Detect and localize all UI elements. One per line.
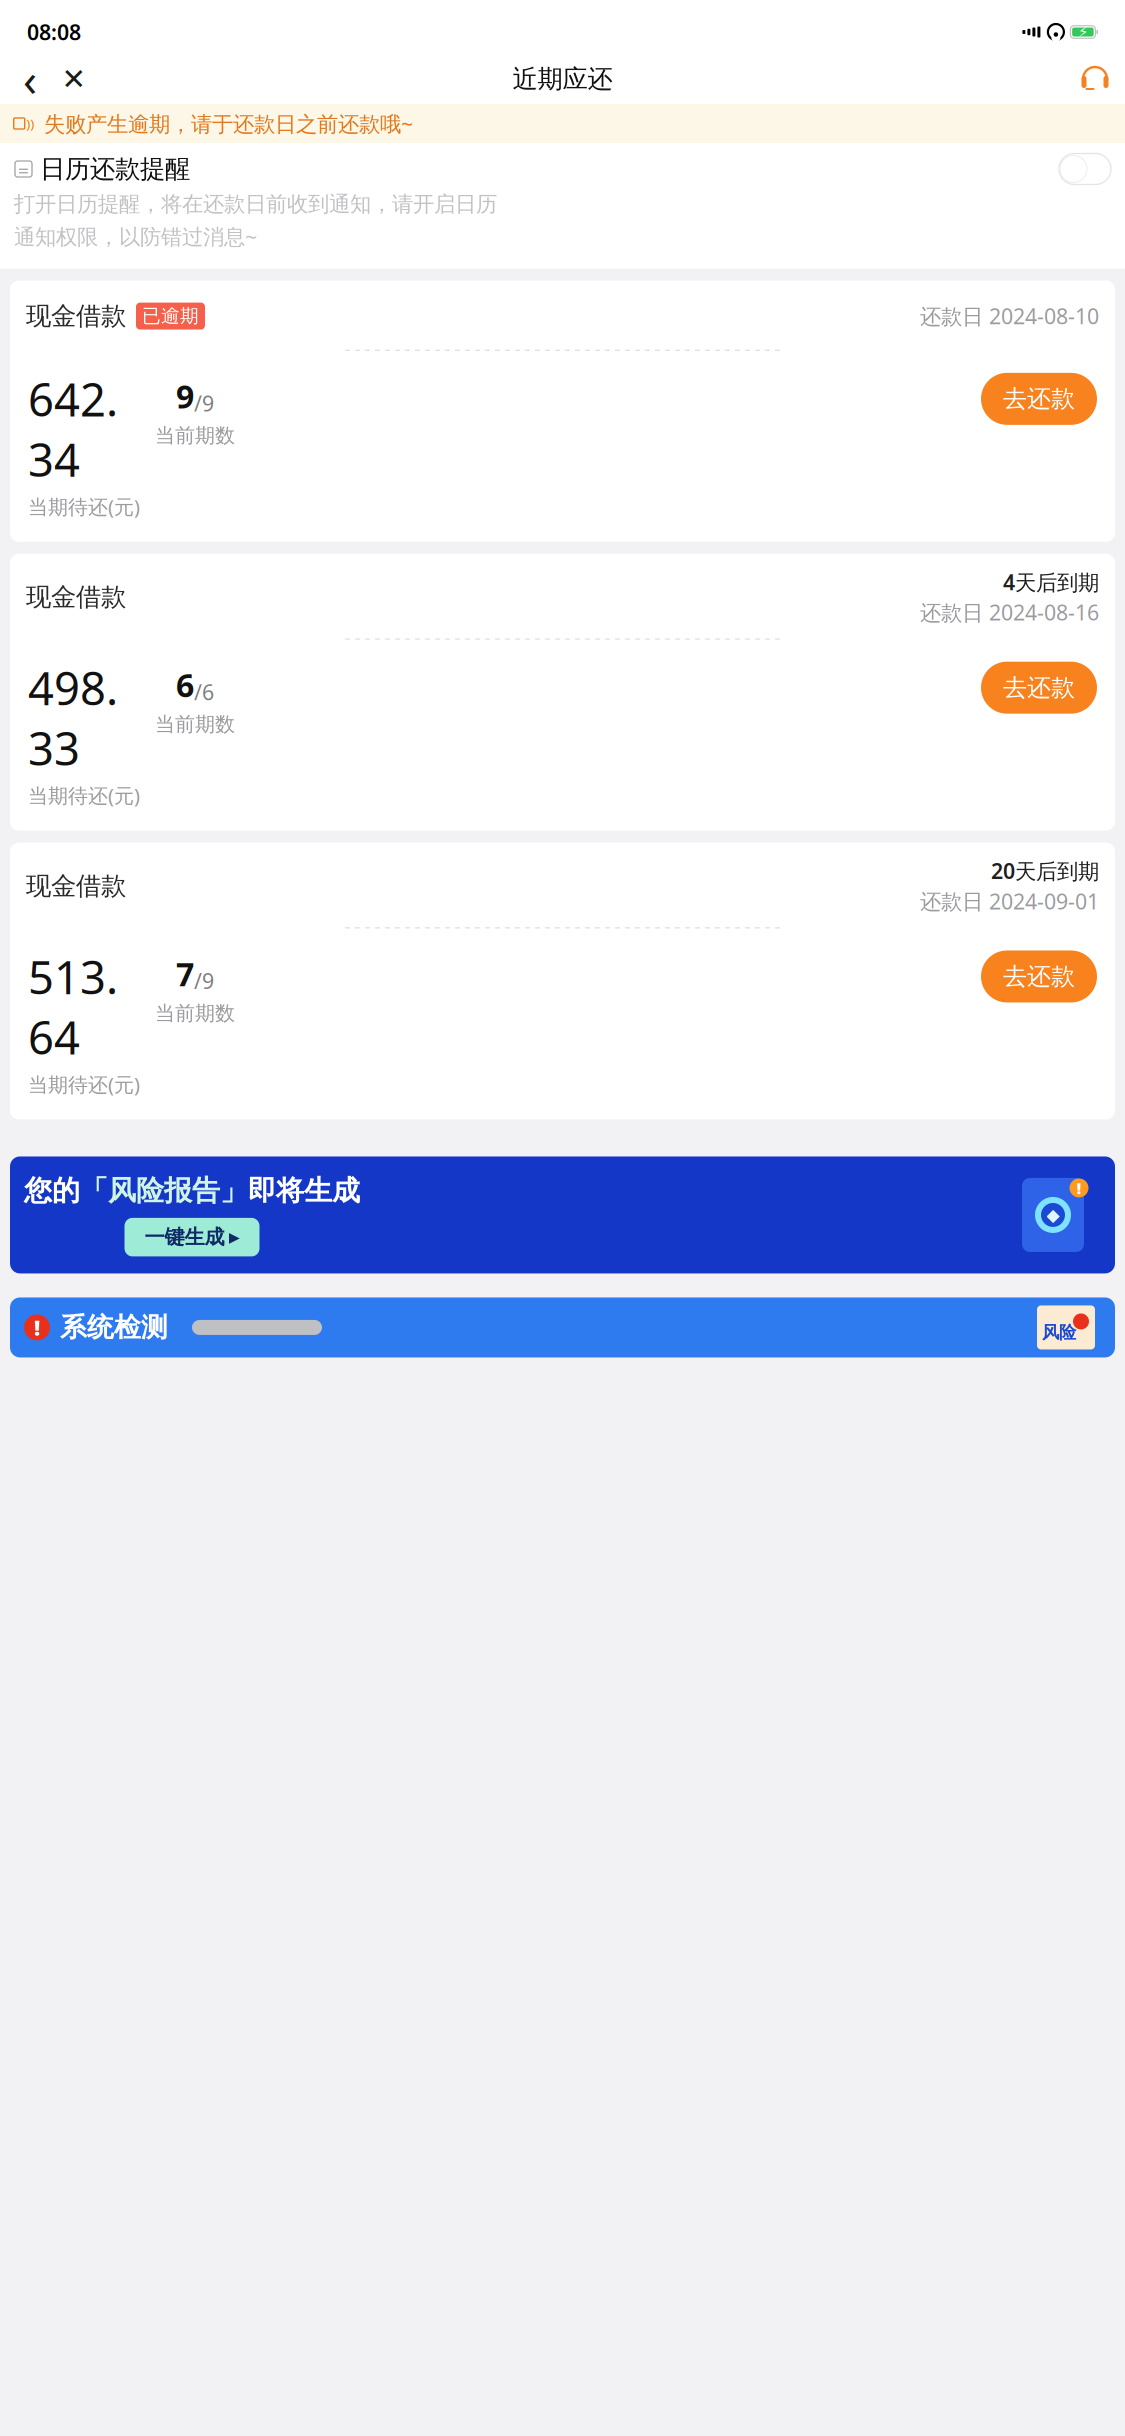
button[interactable]: Back [8, 57, 52, 101]
staticText: 513.64 [28, 946, 118, 1067]
button[interactable]: 您的 [10, 1156, 1115, 1273]
staticText: ! [34, 1313, 40, 1342]
staticText: 去还款 [1003, 673, 1075, 702]
staticText: 当期待还(元) [28, 782, 140, 809]
staticText: 642.34 [28, 369, 118, 489]
staticText: 还款日 2024-09-01 [920, 887, 1099, 915]
staticText: 现金借款 [26, 582, 126, 613]
staticText: 系统检测 [60, 1311, 168, 1344]
staticText: 「风险报告」 [80, 1173, 248, 1208]
staticText: ‹ [23, 49, 37, 109]
button[interactable]: 去还款 [981, 662, 1097, 714]
staticText: 当前期数 [155, 712, 235, 737]
staticText: )) [26, 115, 34, 132]
staticText: 近期应还 [512, 63, 612, 94]
staticText: /9 [194, 389, 214, 417]
staticText: 失败产生逾期，请于还款日之前还款哦~ [44, 109, 413, 138]
staticText: 6 [176, 664, 194, 706]
staticText: 当期待还(元) [28, 493, 140, 520]
staticText: 现金借款 [26, 870, 126, 901]
staticText: /6 [194, 678, 214, 706]
staticText: 打开日历提醒，将在还款日前收到通知，请开启日历 [14, 191, 497, 217]
staticText: 9 [176, 375, 194, 417]
staticText: 还款日 2024-08-16 [920, 598, 1099, 626]
staticText: /9 [194, 967, 214, 995]
staticText: 当前期数 [155, 423, 235, 448]
staticText: 4天后到期 [1003, 568, 1099, 596]
staticText: 去还款 [1003, 384, 1075, 414]
staticText: ▶ [228, 1229, 239, 1245]
staticText: ⚡︎ [1078, 24, 1088, 40]
button[interactable]: 去还款 [981, 950, 1097, 1002]
staticText: 当前期数 [155, 1001, 235, 1026]
staticText: 7 [176, 952, 194, 995]
staticText: 去还款 [1003, 962, 1075, 991]
button[interactable]: 日历还款提醒 [0, 143, 1125, 268]
staticText: ✕ [61, 62, 86, 96]
button[interactable]: ! [10, 1297, 1115, 1357]
button[interactable]: 去还款 [981, 373, 1097, 425]
staticText: 通知权限，以防错过消息~ [14, 222, 257, 250]
staticText: 08:08 [27, 18, 81, 46]
staticText: 您的 [24, 1173, 80, 1208]
button[interactable]: Close [52, 57, 96, 101]
staticText: 现金借款 [26, 300, 126, 332]
staticText: 还款日 2024-08-10 [920, 302, 1099, 330]
staticText: 已逾期 [142, 305, 199, 327]
staticText: 即将生成 [248, 1173, 360, 1208]
staticText: 当期待还(元) [28, 1071, 140, 1097]
staticText: ◆ [1046, 1205, 1059, 1225]
button[interactable]: Customer service [1073, 57, 1117, 101]
staticText: ! [1076, 1177, 1081, 1198]
staticText: 20天后到期 [991, 857, 1099, 885]
staticText: 498.33 [28, 658, 118, 778]
staticText: 风险 [1042, 1322, 1076, 1343]
staticText: 一键生成 [144, 1225, 224, 1249]
staticText: 日历还款提醒 [40, 153, 190, 184]
